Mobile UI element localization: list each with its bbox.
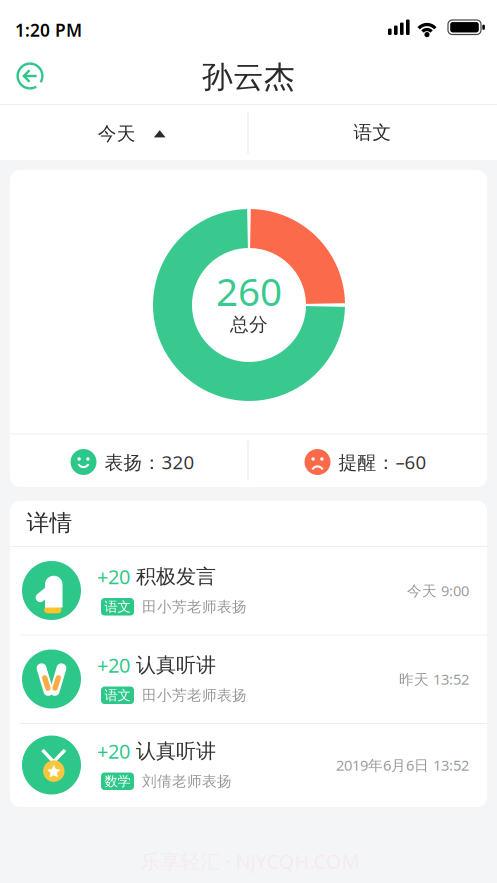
staticText: 详情 [26,509,72,537]
staticText: 认真听讲 [136,653,216,677]
staticText: 田小芳老师表扬 [142,598,247,616]
staticText: 今天 [98,122,136,145]
button[interactable]: +20 [10,635,487,723]
staticText: 语文 [104,599,130,615]
staticText: 田小芳老师表扬 [142,686,247,704]
staticText: 孙云杰 [202,58,295,96]
staticText: 积极发言 [136,564,216,589]
staticText: +20 [97,738,130,764]
staticText: 语文 [104,687,130,703]
staticText: 昨天 13:52 [399,669,469,689]
staticText: 数学 [104,773,130,789]
staticText: 260 [216,265,282,317]
staticText: 语文 [353,121,391,144]
button[interactable]: +20 [10,546,487,634]
staticText: 2019年6月6日 13:52 [336,755,469,775]
staticText: 今天 9:00 [407,581,469,600]
staticText: 提醒：–60 [338,450,426,474]
button[interactable]: 今天 [0,105,247,160]
staticText: 总分 [230,313,268,336]
button[interactable]: 语文 [248,105,496,160]
button[interactable]: +20 [10,723,487,807]
staticText: 1:20 PM [15,18,82,41]
staticText: +20 [97,652,130,678]
staticText: 认真听讲 [136,739,216,763]
staticText: 表扬：320 [104,450,194,474]
staticText: 刘倩老师表扬 [142,772,232,790]
staticText: +20 [97,563,130,590]
staticText: 乐享轻汇 · NJYCQH.COM [140,848,359,874]
button[interactable]: Back [8,54,52,98]
